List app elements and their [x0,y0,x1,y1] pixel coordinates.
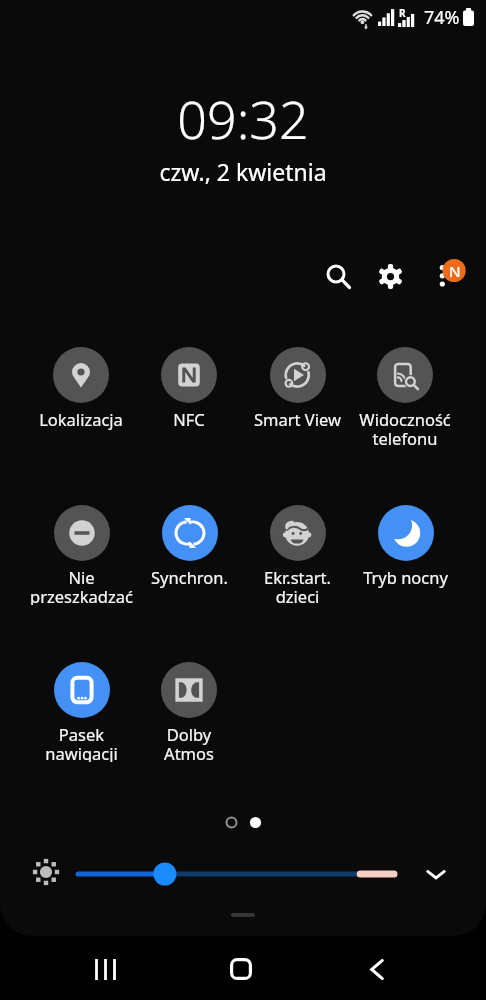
button[interactable]: Synchron. [135,501,243,605]
staticText: Tryb nocny [363,566,448,588]
button[interactable]: Nie przeszkadzać [27,501,135,605]
button[interactable]: NFC [135,343,243,447]
button[interactable]: Search [312,250,364,302]
staticText: Synchron. [151,566,228,588]
button[interactable]: Ekr.start. dzieci [243,501,351,605]
button[interactable]: Brightness [66,856,406,892]
staticText: 09:32 [177,83,309,154]
button[interactable]: Smart View [243,343,351,447]
staticText: Smart View [254,408,341,430]
staticText: Nie przeszkadzać [30,566,133,605]
staticText: czw., 2 kwietnia [159,156,327,187]
button[interactable]: Recents [79,943,131,995]
staticText: 74% [424,5,460,30]
button[interactable]: Pasek nawigacji [27,658,135,762]
button[interactable]: Back [351,943,403,995]
staticText: Lokalizacja [39,408,123,430]
button[interactable]: Widoczność telefonu [351,343,459,447]
staticText: Dolby Atmos [164,723,214,762]
staticText: NFC [173,408,205,430]
button[interactable]: Home [215,943,267,995]
button[interactable]: Lokalizacja [27,343,135,447]
staticText: Pasek nawigacji [45,723,118,762]
button[interactable]: Auto brightness [30,856,62,888]
staticText: Ekr.start. dzieci [264,566,331,605]
staticText: R [399,6,406,20]
button[interactable]: Tryb nocny [351,501,459,605]
staticText: Widoczność telefonu [359,408,451,447]
button[interactable]: Dolby Atmos [135,658,243,762]
button[interactable]: Expand [418,856,454,892]
staticText: N [449,261,461,281]
button[interactable]: More options [417,251,469,303]
button[interactable]: Settings [364,250,416,302]
